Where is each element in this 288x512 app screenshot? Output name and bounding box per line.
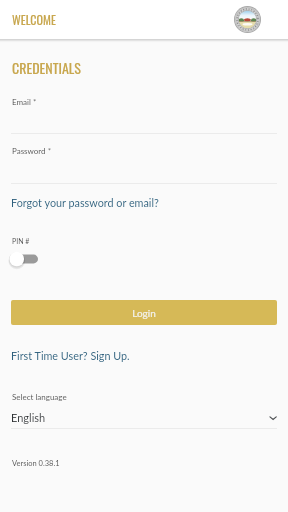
button[interactable]: Login xyxy=(11,300,277,325)
staticText: Version 0.38.1 xyxy=(12,459,60,468)
button[interactable]: WELCOME xyxy=(12,11,56,29)
other: State seal logo xyxy=(234,6,261,33)
button[interactable]: PIN number toggle xyxy=(6,248,42,270)
button[interactable]: First Time User? Sign Up. xyxy=(11,349,130,362)
staticText: English xyxy=(11,411,46,424)
staticText: Password * xyxy=(12,146,52,156)
staticText: Select language xyxy=(12,392,67,402)
staticText: WELCOME xyxy=(12,11,56,29)
staticText: Email * xyxy=(12,97,37,107)
staticText: Forgot your password or email? xyxy=(11,196,159,209)
staticText: CREDENTIALS xyxy=(12,57,81,78)
button[interactable]: Forgot your password or email? xyxy=(11,196,159,209)
staticText: Login xyxy=(132,307,156,319)
staticText: PIN # xyxy=(12,237,30,245)
staticText: First Time User? Sign Up. xyxy=(11,349,130,362)
button[interactable]: English xyxy=(11,408,277,426)
